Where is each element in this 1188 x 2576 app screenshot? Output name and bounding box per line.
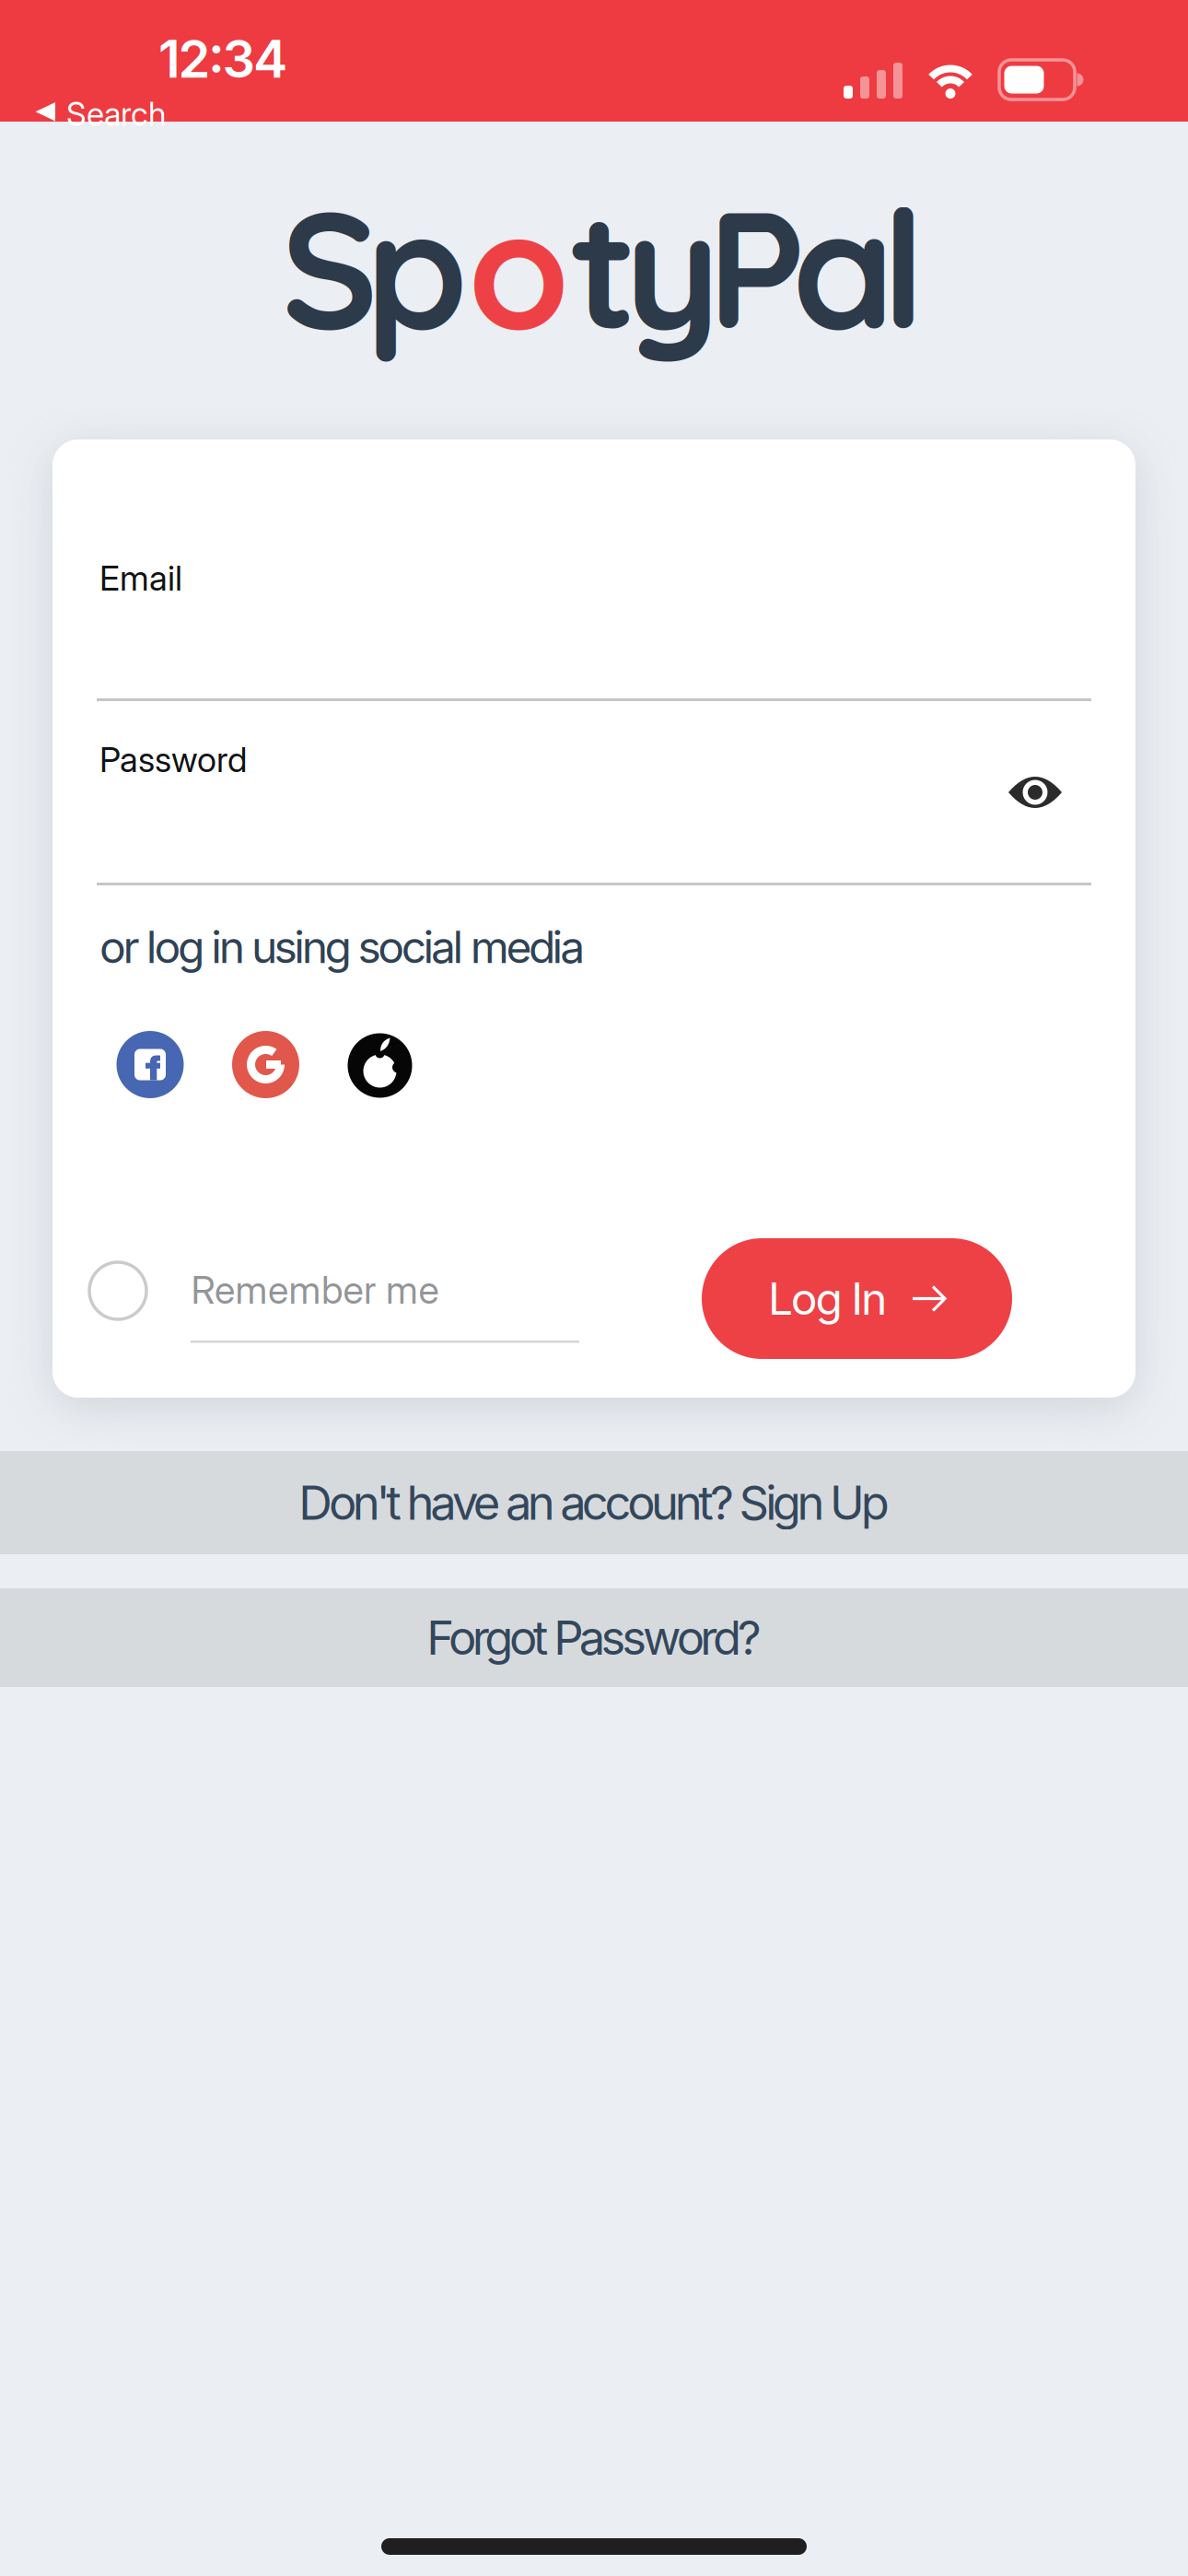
button[interactable]: Remember me [52,439,441,497]
button[interactable]: Log in with Apple [52,439,120,507]
button[interactable]: Don't have an account? Sign Up [0,1451,1188,1554]
button[interactable]: Log in with Google [52,439,120,507]
button[interactable]: Show password [52,439,106,477]
button[interactable]: Forgot Password? [0,1588,1188,1687]
staticText: Don't have an account? Sign Up [299,1475,889,1530]
staticText: o [468,165,570,369]
staticText: Password [99,739,247,780]
staticText: Search [66,95,166,133]
staticText: 12:34 [158,29,287,89]
staticText: Forgot Password? [427,1610,761,1665]
staticText: Remember me [191,1267,439,1312]
button[interactable]: Log In [702,1238,1012,1359]
button[interactable]: Log in with Facebook [52,439,120,507]
staticText: Email [99,558,182,598]
staticText: Log In [768,1273,887,1325]
staticText: tyPal [570,165,926,369]
staticText: or log in using social media [99,921,585,973]
staticText: Sp [281,165,468,369]
